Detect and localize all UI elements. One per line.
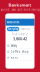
staticText: Savings [21, 27, 30, 31]
button[interactable]: Everyday [7, 27, 19, 31]
staticText: Everyday [8, 27, 18, 31]
staticText: Bank smart [8, 2, 31, 7]
staticText: Rent [11, 56, 18, 59]
staticText: Total balance [11, 32, 28, 36]
button[interactable]: Rent [5, 55, 34, 61]
staticText: Salary [11, 44, 17, 47]
button[interactable]: Savings [21, 27, 30, 31]
button[interactable]: Coffee shop [5, 49, 34, 55]
staticText: Coffee shop [11, 50, 29, 53]
staticText: Accounts [7, 20, 19, 24]
staticText: Spend, save and send money [0, 8, 39, 11]
staticText: 3,860.42 [13, 36, 27, 41]
button[interactable]: Salary [5, 43, 34, 49]
